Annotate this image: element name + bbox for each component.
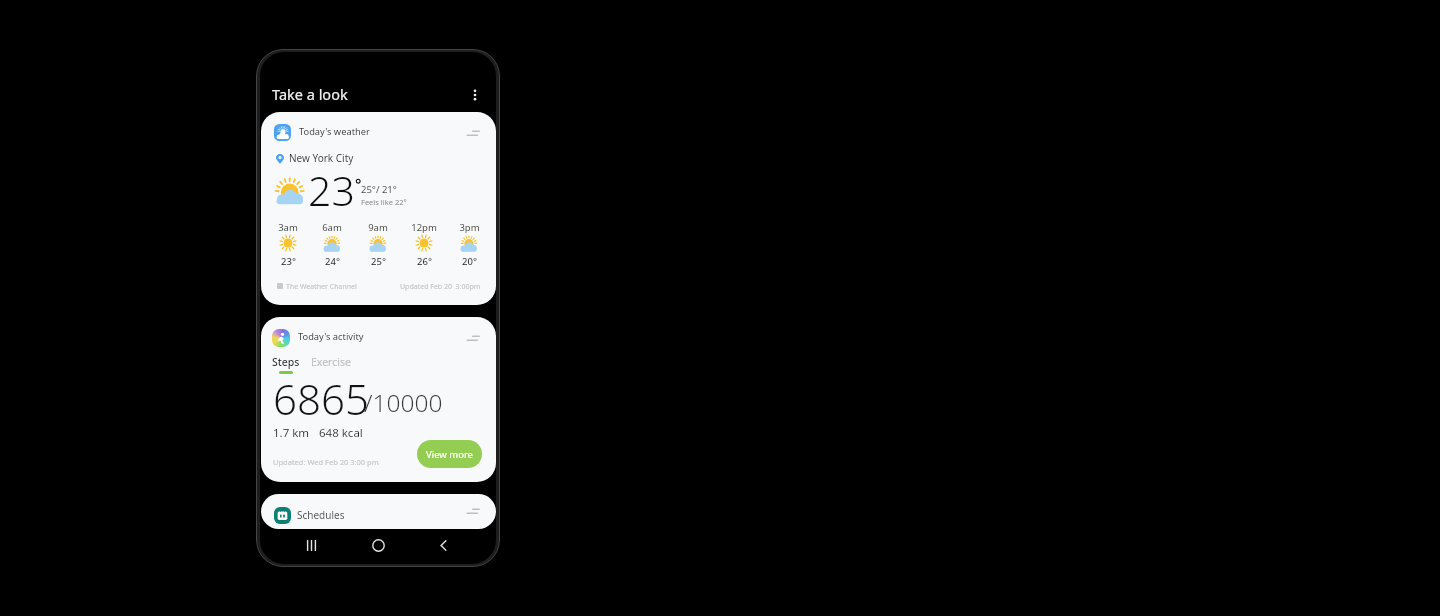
staticText: Schedules: [297, 508, 345, 522]
staticText: /10000: [364, 386, 443, 419]
staticText: 9am: [368, 221, 388, 234]
button[interactable]: View more: [417, 440, 482, 468]
staticText: 12pm: [411, 221, 437, 234]
staticText: View more: [426, 448, 473, 461]
staticText: Feels like 22°: [361, 197, 407, 207]
staticText: 20°: [462, 255, 477, 268]
button[interactable]: More options: [462, 82, 488, 108]
staticText: Updated: Wed Feb 20 3:00 pm: [273, 457, 379, 467]
button[interactable]: Recents: [297, 531, 325, 559]
staticText: 3am: [278, 221, 298, 234]
staticText: Steps: [272, 355, 300, 369]
staticText: 6865: [273, 370, 369, 427]
staticText: Exercise: [311, 355, 351, 369]
staticText: Today's weather: [299, 125, 370, 138]
button[interactable]: Schedules: [261, 494, 496, 529]
button[interactable]: Reorder card: [461, 502, 485, 520]
button[interactable]: Reorder card: [461, 124, 485, 142]
staticText: 26°: [417, 255, 432, 268]
staticText: Updated Feb 20 3:00pm: [400, 282, 481, 292]
staticText: New York City: [289, 151, 354, 165]
button[interactable]: Back: [429, 531, 457, 559]
staticText: 25°/ 21°: [361, 183, 397, 196]
staticText: 3pm: [459, 221, 480, 234]
staticText: 23°: [281, 255, 296, 268]
staticText: The Weather Channel: [286, 282, 357, 292]
button[interactable]: Exercise: [305, 350, 357, 374]
button[interactable]: Today's activity: [261, 317, 496, 482]
staticText: 1.7 km: [273, 425, 310, 441]
button[interactable]: Reorder card: [461, 329, 485, 347]
button[interactable]: Today's weather: [261, 112, 496, 305]
staticText: 24°: [325, 255, 340, 268]
staticText: 23: [308, 162, 355, 218]
staticText: 648 kcal: [319, 425, 363, 441]
staticText: Take a look: [272, 84, 348, 104]
staticText: 6am: [322, 221, 342, 234]
button[interactable]: Home: [364, 531, 392, 559]
button[interactable]: Steps: [266, 350, 306, 379]
staticText: Today's activity: [298, 330, 364, 343]
staticText: 25°: [371, 255, 386, 268]
